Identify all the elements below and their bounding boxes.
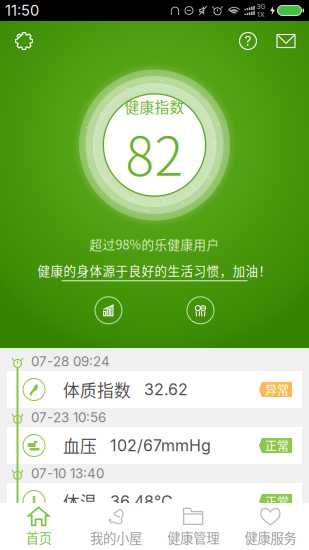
staticText: 血压 (63, 433, 97, 457)
staticText: 32.62 (144, 380, 188, 399)
staticText: 健康的身体源于良好的生活习惯，加油！ (37, 261, 271, 279)
staticText: 36.48°C (110, 492, 173, 511)
staticText: 异常 (265, 381, 289, 398)
staticText: 正常 (265, 493, 289, 510)
button[interactable]: 健康管理 (154, 503, 232, 550)
staticText: 我的小屋 (90, 528, 142, 547)
staticText: ? (244, 33, 251, 49)
staticText: 健康指数 (124, 96, 184, 117)
staticText: 首页 (26, 528, 52, 547)
staticText: 102/67mmHg (110, 436, 211, 455)
button[interactable]: Messages (267, 22, 305, 60)
staticText: 82 (125, 114, 183, 191)
button[interactable]: Trends (92, 294, 124, 326)
staticText: 11:50 (5, 2, 39, 19)
staticText: 超过98%的乐健康用户 (89, 235, 219, 253)
staticText: 1X (257, 10, 265, 19)
staticText: 07-10 13:40 (31, 465, 104, 481)
button[interactable]: Settings (4, 21, 44, 61)
staticText: 3G (256, 2, 265, 10)
button[interactable]: Help (229, 22, 267, 60)
staticText: 07-28 09:24 (31, 353, 110, 369)
staticText: 体温 (63, 489, 97, 513)
button[interactable]: 我的小屋 (77, 503, 154, 550)
button[interactable]: Community (184, 294, 216, 326)
button[interactable]: 体温 (0, 483, 309, 520)
button[interactable]: 体质指数 (0, 371, 309, 408)
staticText: 健康管理 (167, 528, 219, 547)
button[interactable]: 健康服务 (232, 503, 309, 550)
button[interactable]: 首页 (0, 503, 77, 550)
staticText: 正常 (265, 437, 289, 454)
staticText: 健康服务 (244, 528, 296, 547)
button[interactable]: 血压 (0, 427, 309, 464)
staticText: 07-23 10:56 (31, 409, 106, 425)
staticText: 体质指数 (63, 377, 131, 401)
